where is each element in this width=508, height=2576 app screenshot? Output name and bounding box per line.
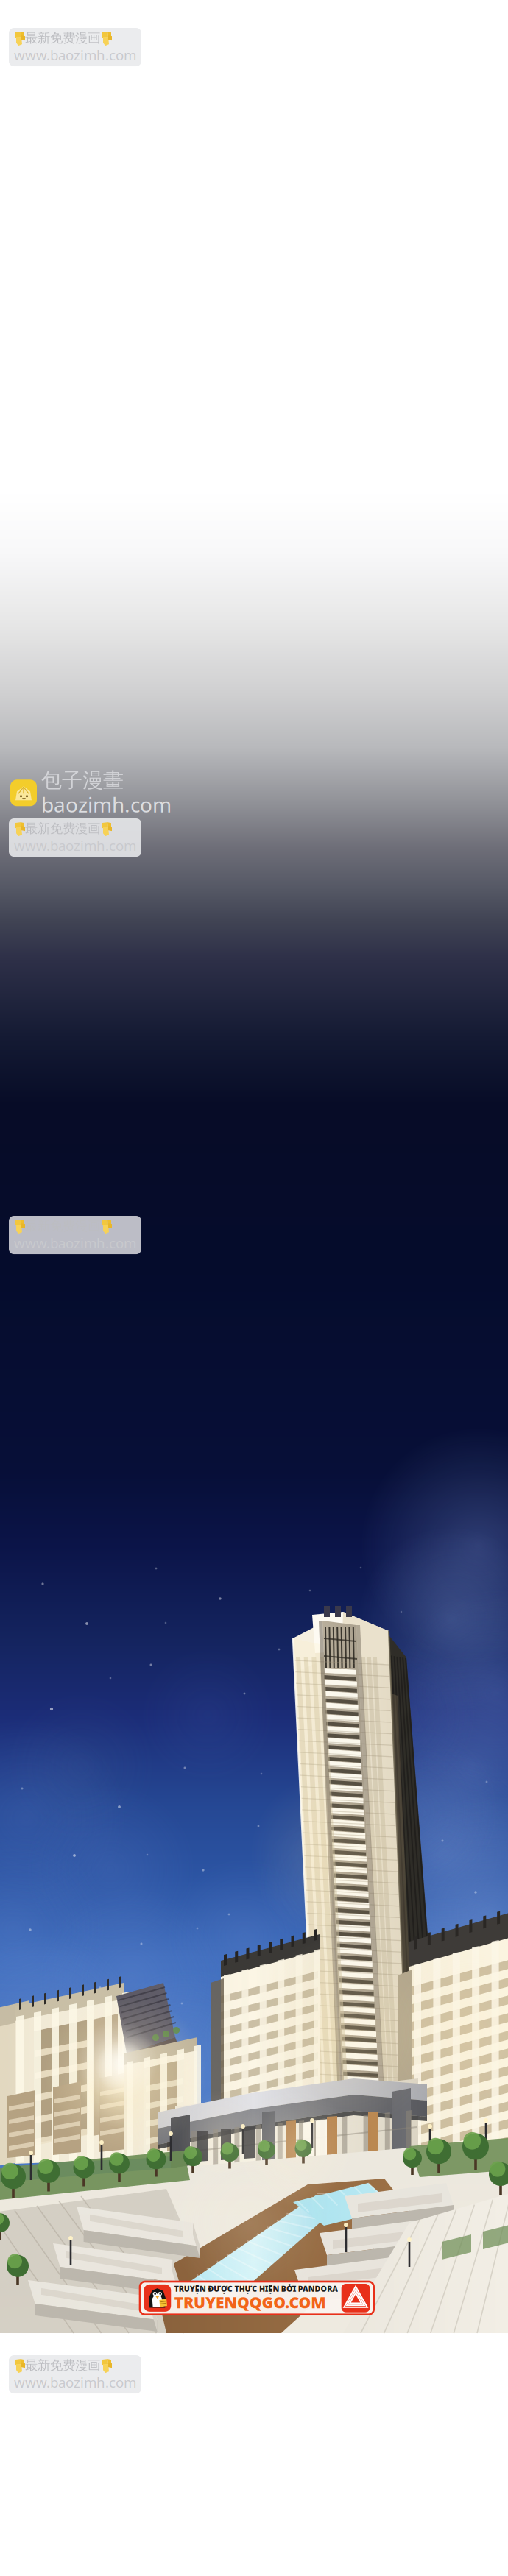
staticText: www.baozimh.com [14, 2373, 136, 2391]
staticText: www.baozimh.com [14, 1234, 136, 1252]
staticText: 最新免费漫画 [25, 2357, 100, 2373]
staticText: baozimh.com [41, 791, 172, 818]
staticText: 包子漫畫 [41, 768, 124, 793]
staticText: TRUYENQQGO.COM [179, 2293, 351, 2317]
staticText: 最新免费漫画 [25, 1218, 100, 1234]
staticText: 最新免费漫画 [25, 30, 100, 46]
staticText: www.baozimh.com [14, 836, 136, 855]
staticText: www.baozimh.com [14, 46, 136, 64]
staticText: 最新免费漫画 [25, 821, 100, 836]
staticText: TRUYỆN ĐƯỢC THỰC HIỆN BỞI PANDORA [179, 2284, 365, 2296]
